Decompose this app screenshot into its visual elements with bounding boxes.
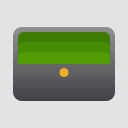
- button[interactable]: Wallet passes: [13, 27, 115, 101]
